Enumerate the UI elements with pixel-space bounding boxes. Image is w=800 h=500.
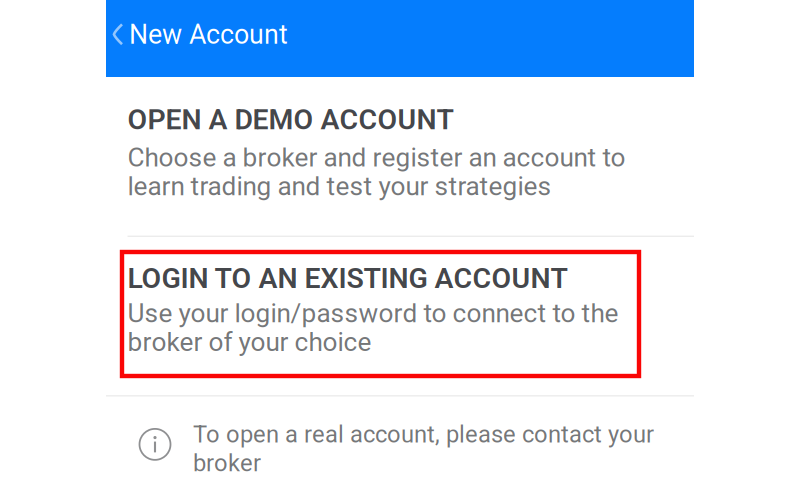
staticText: OPEN A DEMO ACCOUNT bbox=[127, 103, 453, 136]
staticText: broker of your choice bbox=[127, 327, 371, 357]
button[interactable]: OPEN A DEMO ACCOUNT bbox=[106, 77, 694, 236]
button[interactable]: LOGIN TO AN EXISTING ACCOUNT bbox=[106, 237, 694, 395]
staticText: To open a real account, please contact y… bbox=[193, 420, 654, 448]
staticText: learn trading and test your strategies bbox=[127, 171, 551, 202]
staticText: LOGIN TO AN EXISTING ACCOUNT bbox=[127, 262, 567, 295]
staticText: Use your login/password to connect to th… bbox=[127, 298, 618, 329]
button[interactable]: New Account bbox=[106, 0, 694, 77]
staticText: Choose a broker and register an account … bbox=[127, 142, 625, 173]
staticText: broker bbox=[193, 449, 261, 477]
staticText: New Account bbox=[129, 19, 288, 50]
